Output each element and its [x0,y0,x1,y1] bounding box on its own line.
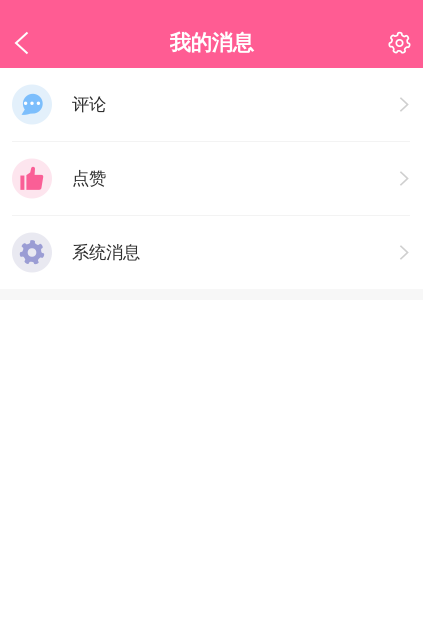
button[interactable]: Back [1,20,43,66]
button[interactable]: 评论 [0,68,423,141]
staticText: 点赞 [72,168,106,189]
button[interactable]: 系统消息 [0,216,423,289]
staticText: 系统消息 [72,242,140,263]
staticText: 我的消息 [169,30,253,56]
button[interactable]: Settings [378,20,421,66]
staticText: 评论 [72,94,106,115]
button[interactable]: 点赞 [0,142,423,215]
